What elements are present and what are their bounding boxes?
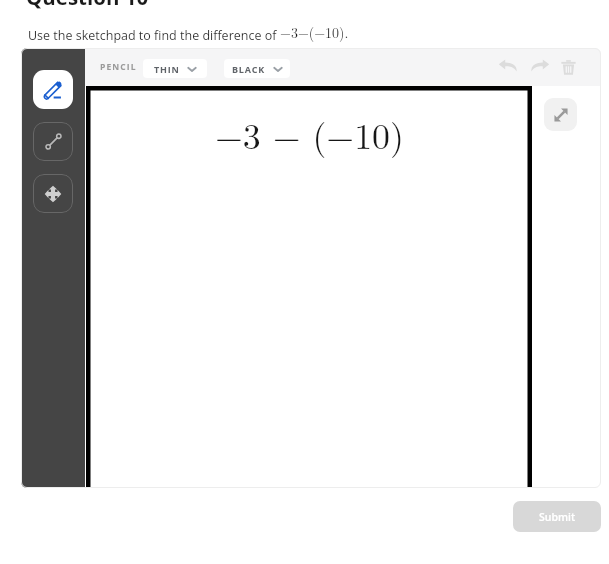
button[interactable]: Redo [529,56,551,78]
staticText: Use the sketchpad to find the difference… [28,27,280,44]
button[interactable]: Expand [544,98,577,131]
staticText: Question 10 [26,0,149,11]
button[interactable]: Line tool [33,122,73,161]
staticText: PENCIL [100,61,137,73]
button[interactable]: Undo [497,56,519,78]
button[interactable]: Move tool [33,174,73,213]
staticText: −3 − (−10) [215,109,404,160]
button[interactable]: BLACK [224,59,290,78]
staticText: Submit [539,510,576,524]
staticText: −3−(−10). [280,22,349,42]
button[interactable]: THIN [143,59,207,78]
button[interactable]: Delete [557,56,579,78]
staticText: THIN [154,63,180,75]
staticText: BLACK [232,63,266,75]
button[interactable]: Pencil tool [33,70,73,109]
button[interactable]: Submit [513,501,601,532]
